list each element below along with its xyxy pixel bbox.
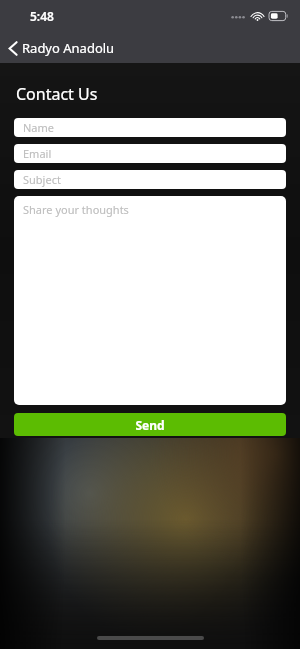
staticText: 5:48 <box>30 8 54 24</box>
button[interactable]: Name <box>14 118 286 137</box>
staticText: Contact Us <box>16 83 98 105</box>
button[interactable]: Share your thoughts <box>14 196 286 405</box>
staticText: Subject <box>23 172 61 187</box>
staticText: Share your thoughts <box>23 202 129 217</box>
staticText: Name <box>23 120 55 135</box>
button[interactable]: Back <box>0 35 125 61</box>
staticText: Send <box>135 417 165 433</box>
button[interactable]: Email <box>14 144 286 163</box>
staticText: Email <box>23 146 52 161</box>
other: Back <box>8 40 18 57</box>
button[interactable]: Subject <box>14 170 286 189</box>
button[interactable]: Send <box>14 413 286 436</box>
staticText: Radyo Anadolu <box>22 39 115 57</box>
